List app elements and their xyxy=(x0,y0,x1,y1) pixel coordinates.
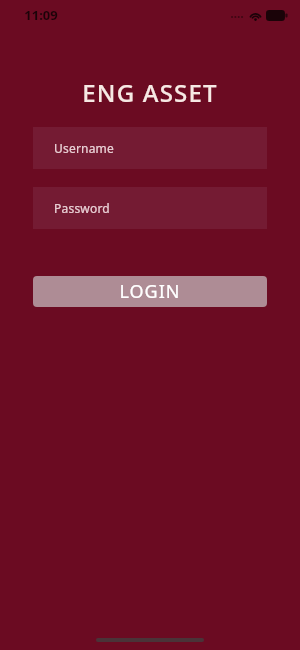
staticText: Username xyxy=(54,140,114,156)
button[interactable]: Username xyxy=(33,127,267,169)
button[interactable]: Password xyxy=(33,187,267,229)
staticText: Password xyxy=(54,200,110,216)
staticText: LOGIN xyxy=(119,279,181,304)
staticText: ENG ASSET xyxy=(82,76,218,109)
staticText: 11:09 xyxy=(24,6,58,24)
button[interactable]: LOGIN xyxy=(33,276,267,307)
